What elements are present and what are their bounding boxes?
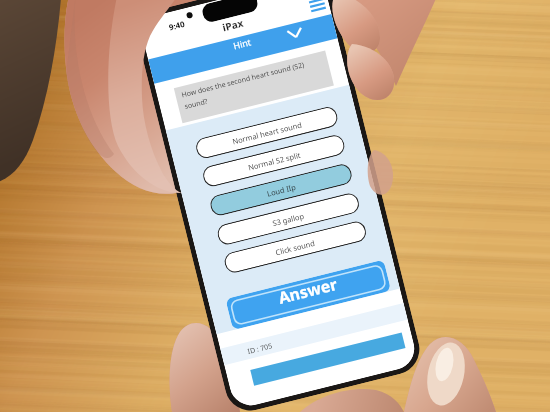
button[interactable]: Normal S2 split xyxy=(202,134,345,187)
staticText: iPax xyxy=(221,16,245,34)
staticText: ID : 705 xyxy=(247,341,274,357)
staticText: Normal S2 split xyxy=(247,150,302,172)
staticText: Answer xyxy=(276,273,339,309)
staticText: Hint xyxy=(232,35,252,51)
staticText: Click sound xyxy=(274,238,316,257)
staticText: Normal heart sound xyxy=(231,119,303,146)
button[interactable]: Normal heart sound xyxy=(195,106,338,159)
button[interactable]: Loud IIp xyxy=(209,163,353,216)
button[interactable]: Click sound xyxy=(224,221,367,274)
button[interactable]: Collapse hint xyxy=(279,18,310,48)
staticText: S3 gallop xyxy=(271,211,306,228)
button[interactable]: Answer xyxy=(225,260,391,330)
staticText: 9:40 xyxy=(167,18,186,32)
staticText: Loud IIp xyxy=(266,182,297,199)
staticText: How does the second heart sound (S2) sou… xyxy=(181,56,325,111)
button[interactable]: S3 gallop xyxy=(217,192,360,245)
button[interactable]: Menu xyxy=(303,0,330,17)
